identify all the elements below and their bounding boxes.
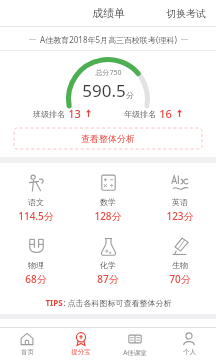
staticText: : 点击各科图标可查看整体分析 — [63, 297, 172, 308]
button[interactable]: 个人 — [162, 328, 216, 360]
button[interactable]: 查看整体分析 — [14, 128, 202, 149]
staticText: 切换考试 — [166, 7, 206, 20]
staticText: 590.5 — [82, 79, 126, 102]
staticText: 查看整体分析 — [81, 133, 135, 144]
staticText: 成绩单 — [92, 6, 125, 20]
staticText: 提分宝 — [71, 348, 91, 356]
staticText: 123分 — [166, 209, 194, 223]
button[interactable]: 提分宝 — [54, 328, 108, 360]
staticText: 年级排名 — [124, 109, 156, 119]
staticText: 114.5分 — [18, 209, 54, 223]
staticText: 16 — [159, 106, 172, 121]
staticText: 68分 — [25, 272, 47, 286]
button[interactable]: 生物 — [144, 234, 216, 288]
button[interactable]: 化学 — [72, 234, 144, 288]
staticText: 物理 — [28, 260, 44, 270]
staticText: TIPS — [45, 297, 63, 308]
button[interactable]: 切换考试 — [156, 3, 216, 24]
staticText: 70分 — [169, 272, 191, 286]
staticText: 生物 — [172, 260, 188, 270]
staticText: A佳教育2018年5月高三百校联考(理科) — [40, 34, 177, 45]
staticText: 语文 — [28, 197, 44, 207]
staticText: 13 — [68, 106, 81, 121]
button[interactable]: 物理 — [0, 234, 72, 288]
staticText: 英语 — [172, 197, 188, 207]
staticText: 总分750 — [95, 68, 122, 78]
staticText: 个人 — [183, 348, 196, 356]
staticText: 分 — [126, 90, 134, 100]
button[interactable]: 英语 — [144, 171, 216, 225]
button[interactable]: 语文 — [0, 171, 72, 225]
staticText: A佳课堂 — [123, 348, 147, 357]
button[interactable]: A佳课堂 — [108, 328, 162, 360]
staticText: 首页 — [21, 348, 34, 356]
button[interactable]: 首页 — [0, 328, 54, 360]
staticText: 数学 — [100, 197, 116, 207]
staticText: 化学 — [100, 260, 116, 270]
staticText: 128分 — [94, 209, 122, 223]
staticText: 班级排名 — [33, 109, 65, 119]
staticText: 87分 — [97, 272, 119, 286]
button[interactable]: 数学 — [72, 171, 144, 225]
